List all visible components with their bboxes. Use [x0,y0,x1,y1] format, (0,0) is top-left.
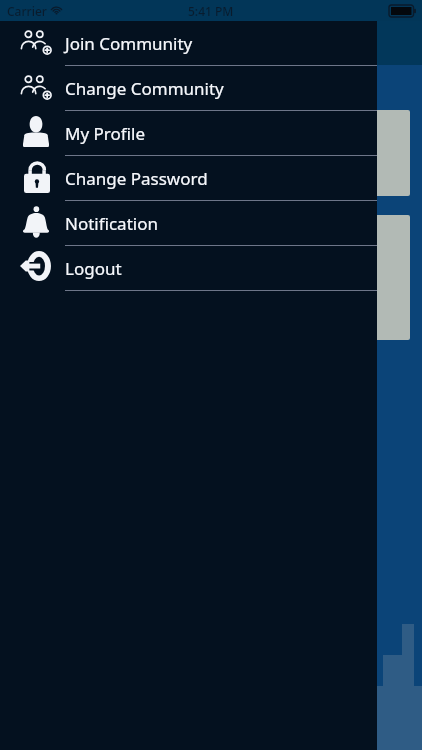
staticText: Change Password [65,167,208,190]
button[interactable]: Change Password [0,156,377,201]
staticText: My Profile [65,122,145,145]
staticText: Logout [65,257,122,280]
staticText: Join Community [65,32,193,55]
staticText: Notification [65,212,158,235]
button[interactable]: Join Community [0,21,377,66]
button[interactable]: Logout [0,246,377,291]
button[interactable]: Notification [0,201,377,246]
button[interactable]: Change Community [0,66,377,111]
staticText: Change Community [65,77,224,100]
staticText: Carrier [7,3,47,19]
staticText: 5:41 PM [188,3,234,19]
button[interactable]: My Profile [0,111,377,156]
